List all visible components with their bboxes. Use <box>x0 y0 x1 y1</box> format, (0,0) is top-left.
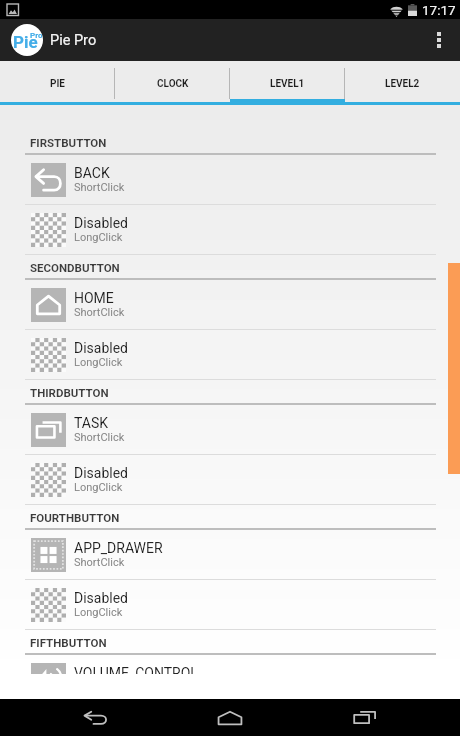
staticText: PIE <box>50 78 65 90</box>
button[interactable]: Disabled <box>0 205 460 255</box>
staticText: Disabled <box>74 340 129 356</box>
staticText: BACK <box>74 165 110 181</box>
button[interactable]: APP_DRAWER <box>0 530 460 580</box>
button[interactable]: Back <box>55 699 135 736</box>
staticText: VOLUME_CONTROL <box>74 665 198 674</box>
button[interactable]: Disabled <box>0 330 460 380</box>
button[interactable]: BACK <box>0 155 460 205</box>
button[interactable]: PIE <box>0 61 115 105</box>
button[interactable]: HOME <box>0 280 460 330</box>
button[interactable]: TASK <box>0 405 460 455</box>
staticText: APP_DRAWER <box>74 540 163 556</box>
button[interactable]: Recent apps <box>325 699 405 736</box>
staticText: Pro <box>30 31 43 40</box>
staticText: ShortClick <box>74 556 125 569</box>
button[interactable]: More options <box>418 19 460 61</box>
staticText: Pie Pro <box>50 32 97 49</box>
staticText: LongClick <box>74 481 123 494</box>
staticText: FIFTHBUTTON <box>30 636 107 649</box>
staticText: 17:17 <box>422 2 456 18</box>
staticText: Pie <box>13 32 38 52</box>
staticText: LongClick <box>74 231 123 244</box>
staticText: ShortClick <box>74 181 125 194</box>
button[interactable]: Disabled <box>0 455 460 505</box>
staticText: CLOCK <box>157 78 189 90</box>
staticText: SECONDBUTTON <box>30 261 120 274</box>
staticText: ShortClick <box>74 431 125 444</box>
staticText: LongClick <box>74 606 123 619</box>
staticText: LongClick <box>74 356 123 369</box>
staticText: HOME <box>74 290 114 306</box>
button[interactable]: Disabled <box>0 580 460 630</box>
staticText: ShortClick <box>74 306 125 319</box>
button[interactable]: VOLUME_CONTROL <box>0 655 460 674</box>
staticText: TASK <box>74 415 109 431</box>
staticText: Disabled <box>74 590 129 606</box>
staticText: THIRDBUTTON <box>30 386 109 399</box>
staticText: LEVEL2 <box>385 78 420 90</box>
staticText: LEVEL1 <box>270 78 305 90</box>
button[interactable]: Home <box>190 699 270 736</box>
button[interactable]: LEVEL1 <box>230 61 345 105</box>
staticText: Disabled <box>74 465 129 481</box>
staticText: FOURTHBUTTON <box>30 511 120 524</box>
button[interactable]: CLOCK <box>115 61 230 105</box>
staticText: Disabled <box>74 215 129 231</box>
staticText: FIRSTBUTTON <box>30 136 107 149</box>
button[interactable]: LEVEL2 <box>345 61 460 105</box>
